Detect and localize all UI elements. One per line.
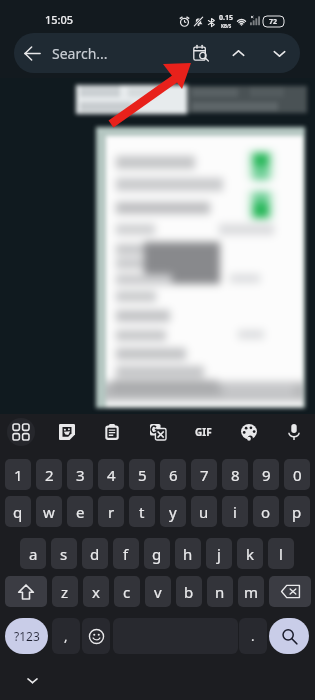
button[interactable]: v	[145, 576, 171, 607]
staticText: k	[246, 544, 255, 564]
staticText: 72	[269, 17, 278, 27]
button[interactable]: m	[238, 576, 264, 607]
button[interactable]: ,	[52, 618, 80, 654]
button[interactable]: Emoji	[82, 618, 110, 654]
button[interactable]: o	[253, 496, 279, 527]
button[interactable]: .	[239, 618, 267, 654]
staticText: t	[139, 502, 145, 522]
staticText: 3	[76, 465, 85, 485]
button[interactable]: z	[52, 576, 78, 607]
button[interactable]: y	[160, 496, 186, 527]
staticText: s	[60, 544, 68, 564]
staticText: y	[169, 502, 177, 522]
button[interactable]: 8	[222, 459, 248, 490]
button[interactable]: g	[144, 538, 170, 569]
staticText: 5	[138, 465, 147, 485]
staticText: e	[76, 502, 85, 522]
staticText: o	[261, 502, 271, 522]
staticText: d	[90, 544, 100, 564]
staticText: ,	[64, 627, 68, 645]
button[interactable]: w	[36, 496, 62, 527]
staticText: v	[154, 582, 162, 602]
button[interactable]: n	[207, 576, 233, 607]
button[interactable]: 0	[284, 459, 310, 490]
button[interactable]: k	[237, 538, 263, 569]
button[interactable]: 9	[253, 459, 279, 490]
button[interactable]: l	[268, 538, 294, 569]
button[interactable]: Apps	[7, 418, 35, 446]
button[interactable]: u	[191, 496, 217, 527]
staticText: j	[217, 544, 221, 564]
staticText: 1	[14, 465, 23, 485]
button[interactable]: e	[67, 496, 93, 527]
button[interactable]: q	[5, 496, 31, 527]
staticText: i	[233, 502, 237, 522]
button[interactable]: Next result	[259, 33, 300, 73]
button[interactable]: Search	[269, 618, 309, 654]
button[interactable]: r	[98, 496, 124, 527]
button[interactable]: GIF	[189, 418, 217, 446]
button[interactable]: Search by date	[184, 33, 218, 73]
button[interactable]: Voice input	[280, 418, 308, 446]
button[interactable]: Hide keyboard	[20, 668, 44, 692]
staticText: w	[43, 502, 55, 522]
staticText: 0.15	[219, 13, 233, 23]
staticText: GIF	[195, 425, 212, 439]
button[interactable]: 6	[160, 459, 186, 490]
staticText: u	[199, 502, 209, 522]
button[interactable]: c	[114, 576, 140, 607]
staticText: n	[215, 582, 225, 602]
button[interactable]: Back	[14, 33, 50, 73]
button[interactable]: 5	[129, 459, 155, 490]
staticText: f	[123, 544, 129, 564]
staticText: .	[251, 627, 255, 645]
staticText: q	[13, 502, 23, 522]
staticText: Search...	[52, 44, 184, 63]
button[interactable]: Shift	[5, 576, 47, 607]
button[interactable]: 4	[98, 459, 124, 490]
staticText: 0	[293, 465, 302, 485]
staticText: g	[152, 544, 162, 564]
button[interactable]: d	[82, 538, 108, 569]
staticText: 2	[45, 465, 54, 485]
button[interactable]: j	[206, 538, 232, 569]
button[interactable]: x	[83, 576, 109, 607]
button[interactable]: a	[20, 538, 46, 569]
button[interactable]: h	[175, 538, 201, 569]
button[interactable]: s	[51, 538, 77, 569]
button[interactable]: Clipboard	[98, 418, 126, 446]
staticText: z	[61, 582, 69, 602]
staticText: a	[29, 544, 38, 564]
button[interactable]: p	[284, 496, 310, 527]
staticText: 4	[107, 465, 116, 485]
button[interactable]: Translate	[144, 418, 172, 446]
staticText: ?123	[14, 628, 40, 644]
staticText: 7	[200, 465, 209, 485]
staticText: 6	[169, 465, 178, 485]
button[interactable]: 3	[67, 459, 93, 490]
button[interactable]: f	[113, 538, 139, 569]
staticText: c	[123, 582, 131, 602]
staticText: r	[108, 502, 115, 522]
staticText: p	[292, 502, 302, 522]
staticText: x	[92, 582, 100, 602]
staticText: 9	[262, 465, 271, 485]
staticText: 15:05	[45, 12, 74, 27]
button[interactable]: 2	[36, 459, 62, 490]
button[interactable]: b	[176, 576, 202, 607]
button[interactable]: t	[129, 496, 155, 527]
button[interactable]: Backspace	[269, 576, 311, 607]
button[interactable]: i	[222, 496, 248, 527]
button[interactable]: Stickers	[53, 418, 81, 446]
staticText: b	[184, 582, 194, 602]
button[interactable]: Previous result	[218, 33, 259, 73]
staticText: KB/S	[221, 23, 232, 29]
button[interactable]: 7	[191, 459, 217, 490]
button[interactable]: 1	[5, 459, 31, 490]
staticText: h	[183, 544, 193, 564]
staticText: l	[279, 544, 283, 564]
button[interactable]: ?123	[5, 618, 48, 654]
button[interactable]: Themes	[235, 418, 263, 446]
staticText: m	[244, 582, 259, 602]
